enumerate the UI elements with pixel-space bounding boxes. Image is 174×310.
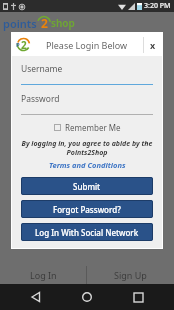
staticText: Log In With Social Network (35, 227, 139, 238)
staticText: shop (51, 16, 75, 30)
staticText: Username (21, 63, 63, 75)
staticText: 3:20 PM (144, 1, 171, 11)
button[interactable]: Recent apps (123, 284, 153, 310)
staticText: Remember Me (65, 122, 121, 133)
button[interactable]: Close (144, 33, 162, 56)
button[interactable]: Password (21, 93, 153, 115)
button[interactable]: Forgot Password? (21, 200, 153, 218)
button[interactable]: Home (72, 284, 102, 310)
button[interactable]: Username (21, 63, 153, 85)
staticText: 2 (41, 15, 48, 31)
staticText: Forgot Password? (53, 204, 121, 215)
button[interactable]: Terms and Conditions (21, 160, 153, 170)
staticText: Submit (73, 181, 101, 192)
staticText: Sign Up (114, 269, 147, 281)
button[interactable]: Log In With Social Network (21, 223, 153, 241)
staticText: Terms and Conditions (49, 160, 126, 170)
staticText: By logging in, you agree to abide by the… (21, 139, 153, 157)
staticText: P (16, 41, 20, 49)
staticText: x (150, 39, 156, 51)
button[interactable]: Sign Up (87, 266, 174, 284)
staticText: points (3, 16, 37, 31)
button[interactable]: Remember Me (52, 120, 123, 135)
staticText: Log In (30, 269, 57, 281)
staticText: Password (21, 93, 60, 105)
button[interactable]: Submit (21, 177, 153, 195)
button[interactable]: Back (21, 284, 51, 310)
staticText: 2 (21, 38, 27, 52)
staticText: Please Login Below (46, 39, 128, 51)
button[interactable]: Log In (0, 266, 86, 284)
